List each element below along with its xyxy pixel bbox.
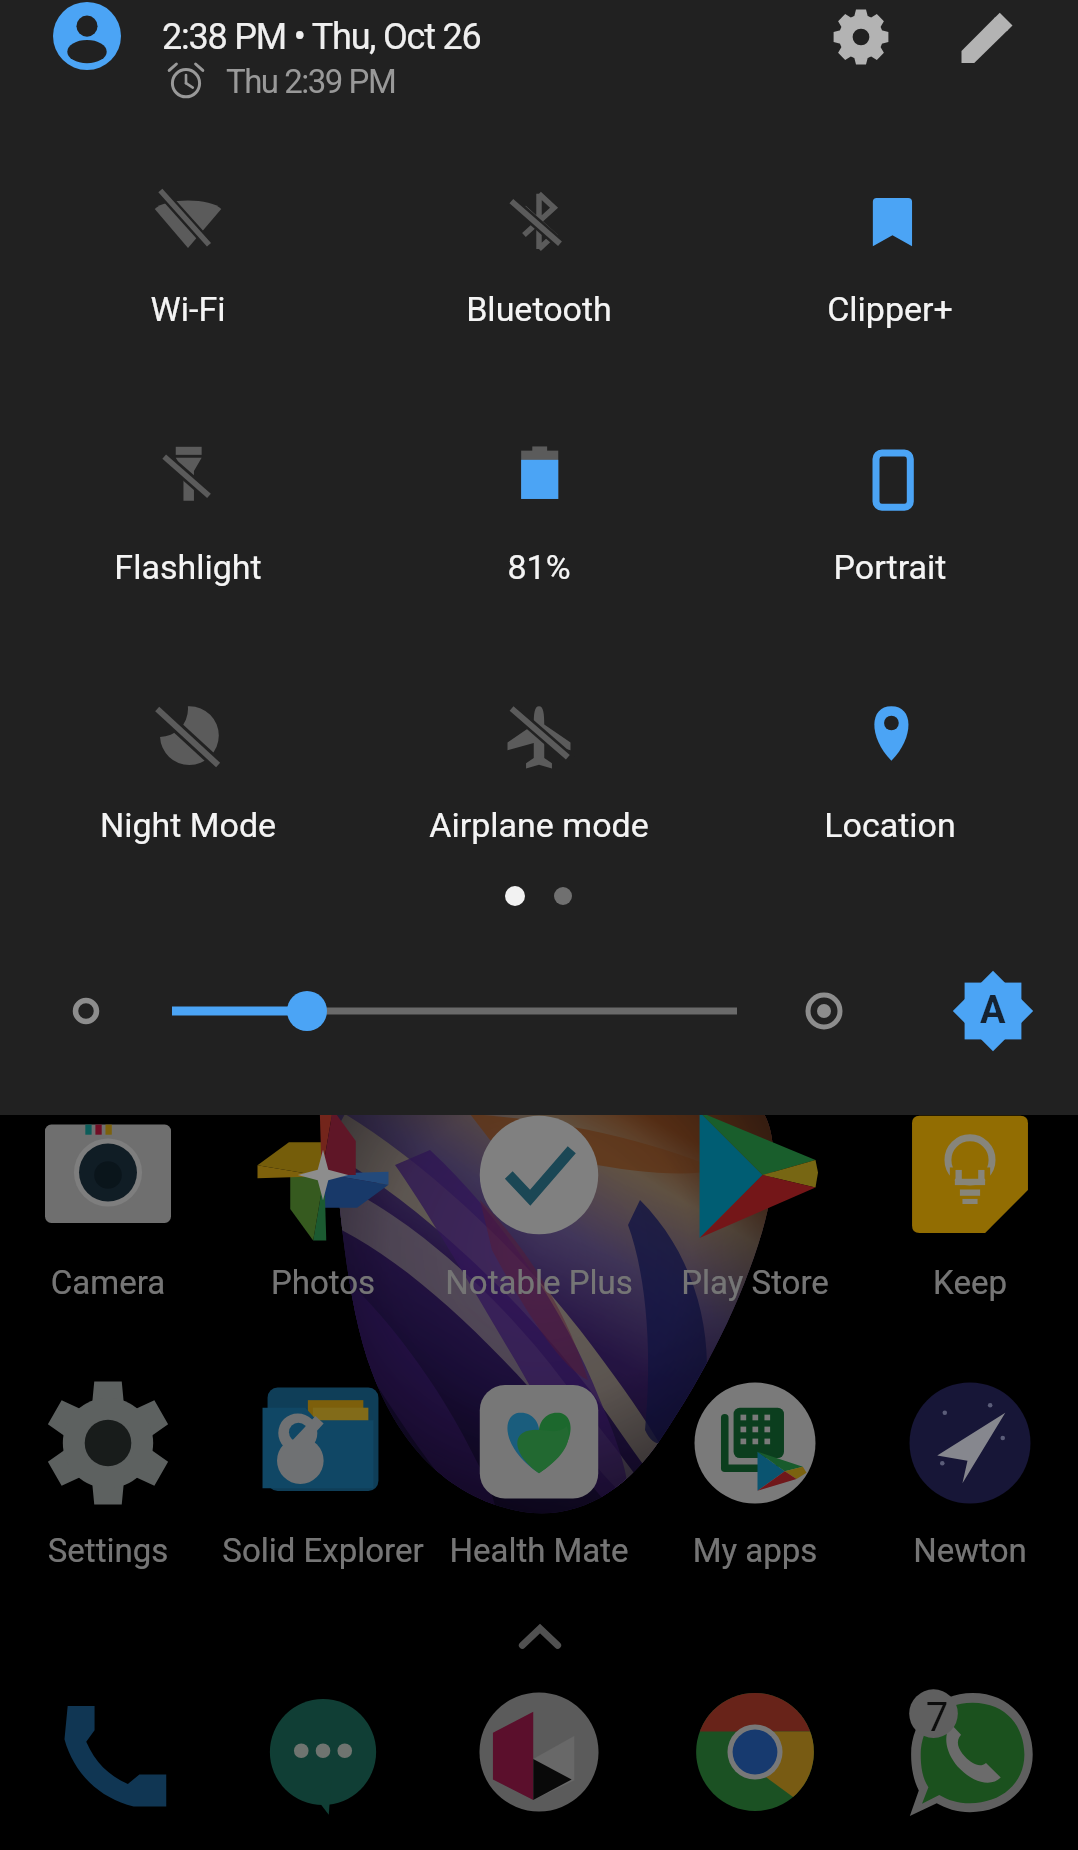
button[interactable]: Bluetooth (379, 160, 699, 330)
staticText: Portrait (730, 547, 1050, 587)
staticText: Wi-Fi (28, 289, 348, 329)
staticText: Clipper+ (730, 289, 1050, 329)
button[interactable]: Photos (216, 1106, 430, 1302)
staticText: Notable Plus (432, 1263, 646, 1302)
button[interactable]: Auto brightness (953, 971, 1033, 1051)
button[interactable]: Wi-Fi (28, 160, 348, 330)
button[interactable]: Settings (832, 8, 890, 66)
button[interactable]: Brightness high (794, 981, 854, 1041)
staticText: Airplane mode (379, 805, 699, 845)
staticText: 81% (379, 547, 699, 587)
button[interactable]: Notable Plus (432, 1106, 646, 1302)
button[interactable]: Night Mode (28, 676, 348, 846)
button[interactable]: Camera (1, 1106, 215, 1302)
staticText: 7 (917, 1694, 957, 1741)
staticText: Camera (1, 1263, 215, 1302)
button[interactable]: Portrait (730, 418, 1050, 588)
staticText: Location (730, 805, 1050, 845)
button[interactable]: Messages (259, 1688, 387, 1816)
staticText: Health Mate (432, 1531, 646, 1570)
button[interactable]: Newton (863, 1374, 1077, 1570)
staticText: Keep (863, 1263, 1077, 1302)
button[interactable]: Play Store (648, 1106, 862, 1302)
button[interactable]: Flashlight (28, 418, 348, 588)
button[interactable]: Keep (863, 1106, 1077, 1302)
button[interactable]: Solid Explorer (216, 1374, 430, 1570)
button[interactable]: My apps (648, 1374, 862, 1570)
staticText: Newton (863, 1531, 1077, 1570)
button[interactable]: All apps (518, 1618, 562, 1662)
staticText: Bluetooth (379, 289, 699, 329)
button[interactable]: Chrome (691, 1688, 819, 1816)
button[interactable]: 81% (379, 418, 699, 588)
staticText: 2:38 PM • Thu, Oct 26 (162, 16, 481, 58)
button[interactable]: Account (53, 2, 121, 70)
staticText: Night Mode (28, 805, 348, 845)
staticText: A (980, 988, 1006, 1033)
staticText: Settings (1, 1531, 215, 1570)
staticText: Thu 2:39 PM (226, 62, 396, 101)
button[interactable]: Edit (958, 8, 1016, 66)
button[interactable]: Clipper+ (730, 160, 1050, 330)
staticText: Photos (216, 1263, 430, 1302)
button[interactable]: Airplane mode (379, 676, 699, 846)
button[interactable]: WhatsApp (906, 1688, 1034, 1816)
button[interactable]: Brightness low (56, 981, 116, 1041)
staticText: Flashlight (28, 547, 348, 587)
button[interactable]: Health Mate (432, 1374, 646, 1570)
button[interactable]: Phone (44, 1688, 172, 1816)
button[interactable]: Settings (1, 1374, 215, 1570)
staticText: Play Store (648, 1263, 862, 1302)
button[interactable]: Play Music (475, 1688, 603, 1816)
staticText: My apps (648, 1531, 862, 1570)
staticText: Solid Explorer (216, 1531, 430, 1570)
button[interactable]: Location (730, 676, 1050, 846)
